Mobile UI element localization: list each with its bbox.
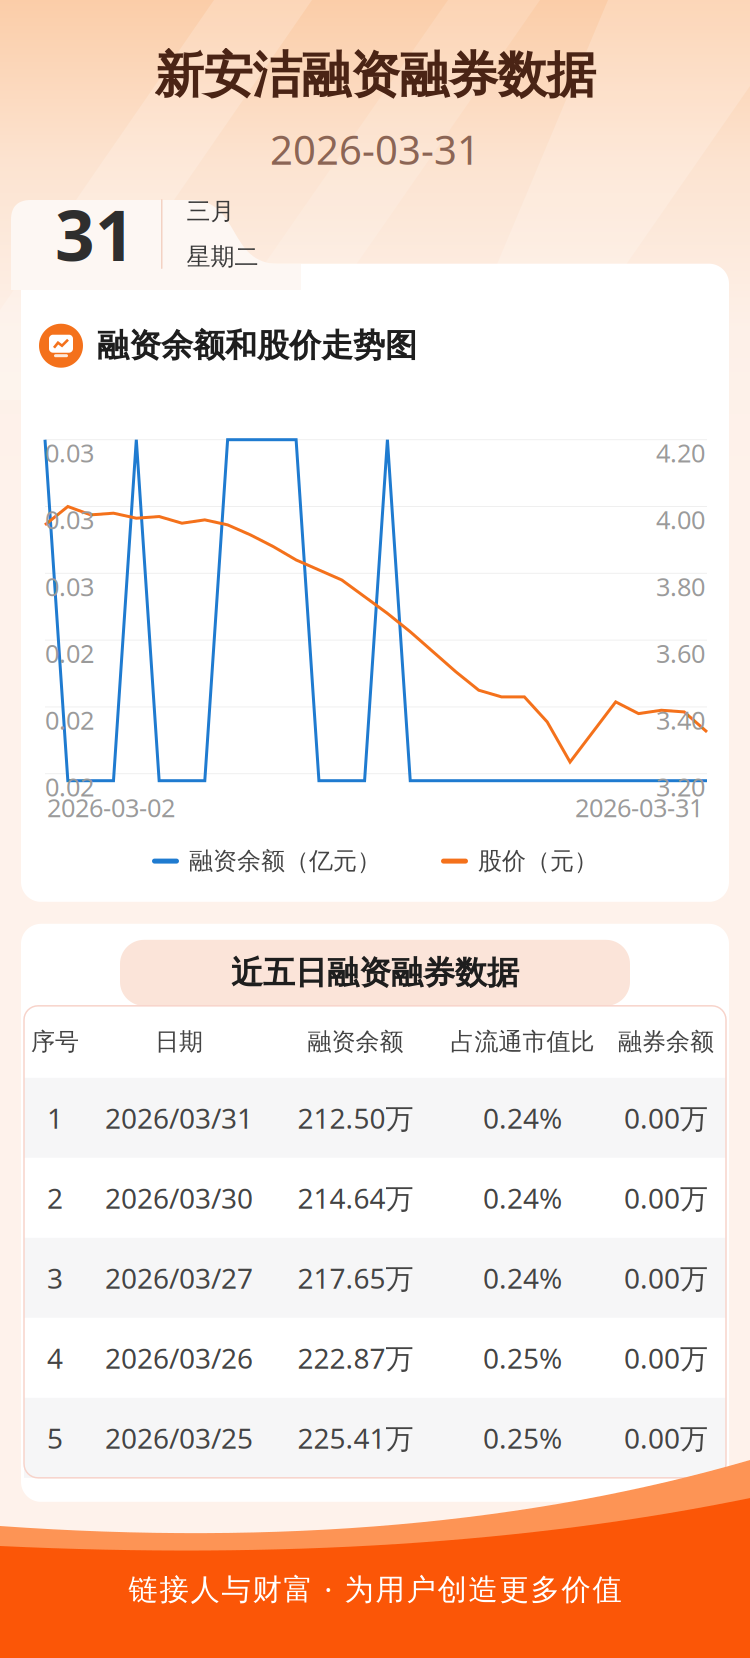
staticText: 序号 <box>31 1027 79 1057</box>
staticText: 3.60 <box>656 636 705 670</box>
staticText: 0.03 <box>45 436 94 469</box>
staticText: 三月 <box>186 196 234 226</box>
staticText: 2026-03-02 <box>47 791 175 824</box>
staticText: 2026-03-31 <box>270 123 480 176</box>
staticText: 0.03 <box>45 503 94 536</box>
staticText: 日期 <box>155 1027 203 1057</box>
staticText: 2026/03/25 <box>105 1419 253 1456</box>
staticText: 0.02 <box>45 770 94 803</box>
staticText: 4.20 <box>656 436 705 469</box>
staticText: 214.64万 <box>297 1179 413 1216</box>
staticText: 3.40 <box>656 703 705 737</box>
staticText: 4 <box>47 1339 63 1376</box>
staticText: 近五日融资融券数据 <box>231 953 519 992</box>
staticText: 0.25% <box>483 1419 562 1456</box>
staticText: 链接人与财富 · 为用户创造更多价值 <box>128 1569 621 1608</box>
staticText: 4.00 <box>656 503 705 536</box>
staticText: 2026-03-31 <box>575 791 703 824</box>
staticText: 0.02 <box>45 703 94 737</box>
staticText: 2026/03/26 <box>105 1339 253 1376</box>
staticText: 占流通市值比 <box>450 1027 594 1057</box>
staticText: 222.87万 <box>297 1339 413 1376</box>
staticText: 0.24% <box>483 1099 562 1136</box>
staticText: 融资余额和股价走势图 <box>97 326 417 365</box>
staticText: 3.20 <box>656 770 705 803</box>
staticText: 0.00万 <box>624 1419 708 1456</box>
staticText: 融资余额（亿元） <box>189 846 381 876</box>
staticText: 0.24% <box>483 1179 562 1216</box>
staticText: 0.24% <box>483 1259 562 1296</box>
staticText: 2026/03/30 <box>105 1179 253 1216</box>
staticText: 0.03 <box>45 569 94 603</box>
staticText: 2026/03/27 <box>105 1259 253 1296</box>
staticText: 212.50万 <box>297 1099 413 1136</box>
staticText: 3 <box>47 1259 63 1296</box>
staticText: 225.41万 <box>297 1419 413 1456</box>
staticText: 股价（元） <box>478 846 598 876</box>
staticText: 2 <box>47 1179 63 1216</box>
staticText: 0.00万 <box>624 1339 708 1376</box>
staticText: 31 <box>55 188 135 280</box>
staticText: 3.80 <box>656 569 705 603</box>
staticText: 2026/03/31 <box>105 1099 253 1136</box>
staticText: 1 <box>47 1099 63 1136</box>
staticText: 新安洁融资融券数据 <box>154 45 595 106</box>
staticText: 融资余额 <box>307 1027 403 1057</box>
staticText: 5 <box>47 1419 63 1456</box>
staticText: 融券余额 <box>618 1027 714 1057</box>
staticText: 0.00万 <box>624 1099 708 1136</box>
staticText: 0.25% <box>483 1339 562 1376</box>
staticText: 0.02 <box>45 636 94 670</box>
staticText: 0.00万 <box>624 1259 708 1296</box>
staticText: 星期二 <box>186 242 258 271</box>
staticText: 217.65万 <box>297 1259 413 1296</box>
staticText: 0.00万 <box>624 1179 708 1216</box>
